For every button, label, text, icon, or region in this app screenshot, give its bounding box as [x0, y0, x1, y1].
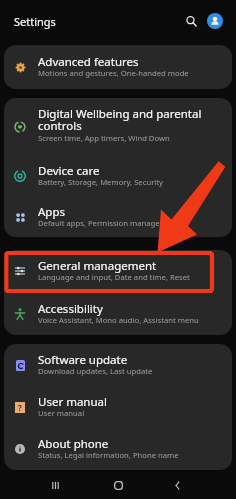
- button[interactable]: Account: [207, 13, 223, 29]
- button[interactable]: Device care: [4, 155, 232, 196]
- button[interactable]: Recents: [42, 472, 68, 498]
- staticText: General management: [38, 258, 157, 274]
- staticText: Digital Wellbeing and parental controls: [38, 106, 224, 133]
- staticText: Motions and gestures, One-handed mode: [38, 68, 189, 78]
- staticText: Software update: [38, 352, 128, 368]
- button[interactable]: About phone: [4, 428, 232, 470]
- button[interactable]: Back: [164, 472, 190, 498]
- button[interactable]: Advanced features: [4, 45, 232, 89]
- button[interactable]: General management: [4, 250, 232, 292]
- button[interactable]: Search: [181, 11, 201, 31]
- staticText: User manual: [38, 408, 85, 418]
- staticText: User manual: [38, 394, 107, 410]
- staticText: Download updates, Last update: [38, 366, 153, 376]
- staticText: Language and input, Date and time, Reset: [38, 272, 190, 282]
- staticText: About phone: [38, 436, 109, 452]
- staticText: Status, Legal information, Phone name: [38, 450, 179, 460]
- button[interactable]: Apps: [4, 196, 232, 237]
- button[interactable]: Home: [105, 472, 131, 498]
- staticText: Accessibility: [38, 301, 103, 317]
- button[interactable]: ?: [4, 386, 232, 428]
- staticText: Apps: [38, 204, 66, 220]
- staticText: Settings: [14, 14, 56, 29]
- button[interactable]: Software update: [4, 344, 232, 386]
- staticText: Voice Assistant, Mono audio, Assistant m…: [38, 315, 199, 325]
- button[interactable]: Accessibility: [4, 292, 232, 335]
- staticText: ?: [18, 402, 22, 413]
- staticText: Battery, Storage, Memory, Security: [38, 177, 163, 187]
- button[interactable]: Digital Wellbeing and parental controls: [4, 98, 232, 155]
- staticText: Default apps, Permission manager: [38, 218, 163, 228]
- staticText: Device care: [38, 163, 100, 179]
- staticText: Advanced features: [38, 54, 139, 70]
- staticText: Screen time, App timers, Wind Down: [38, 133, 170, 143]
